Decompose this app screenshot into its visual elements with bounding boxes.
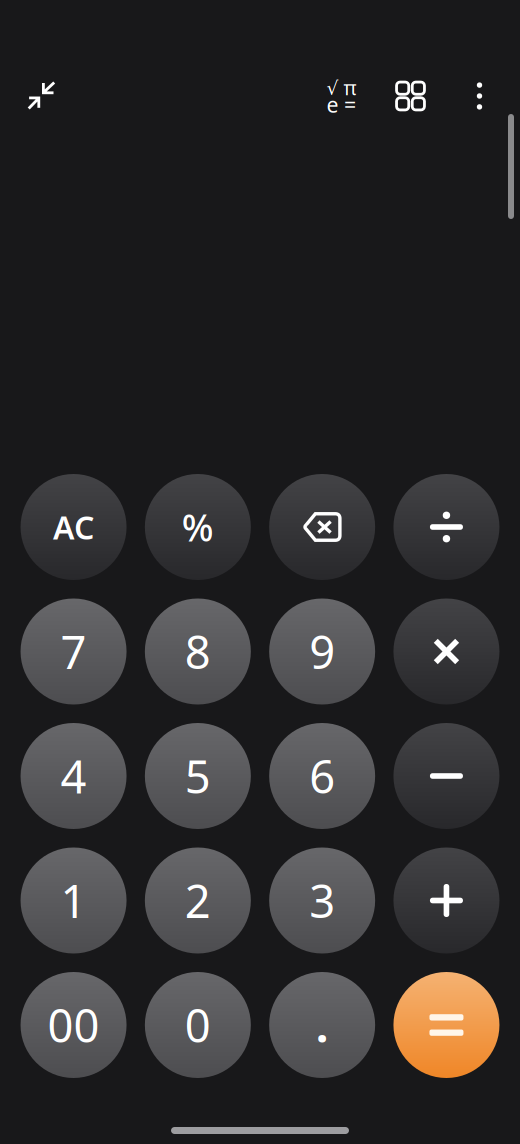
button[interactable]: 6 — [269, 723, 375, 829]
button[interactable]: 8 — [145, 598, 251, 704]
button[interactable]: 5 — [145, 723, 251, 829]
staticText: AC — [53, 506, 94, 548]
staticText: 0 — [185, 995, 211, 1055]
button[interactable]: . — [269, 972, 375, 1078]
button[interactable]: More options — [462, 73, 496, 119]
staticText: 8 — [185, 621, 211, 682]
staticText: . — [316, 995, 329, 1055]
staticText: e — [327, 90, 339, 119]
button[interactable]: 0 — [145, 972, 251, 1078]
staticText: 2 — [185, 870, 211, 931]
button[interactable] — [393, 847, 499, 953]
button[interactable] — [269, 474, 375, 580]
button[interactable]: 3 — [269, 847, 375, 953]
staticText: √ — [327, 77, 339, 99]
staticText: = — [344, 90, 356, 119]
button[interactable] — [393, 474, 499, 580]
button[interactable]: 2 — [145, 847, 251, 953]
button[interactable]: Scientific mode — [324, 81, 358, 111]
button[interactable] — [393, 598, 499, 704]
button[interactable]: 9 — [269, 598, 375, 704]
button[interactable]: 1 — [21, 847, 127, 953]
staticText: π — [343, 74, 356, 101]
staticText: % — [182, 502, 214, 552]
button[interactable]: Keypad layout — [390, 73, 430, 119]
staticText: 00 — [48, 995, 100, 1055]
staticText: 6 — [309, 746, 335, 806]
button[interactable]: 00 — [21, 972, 127, 1078]
staticText: 5 — [185, 746, 211, 806]
staticText: 3 — [309, 870, 335, 931]
staticText: 7 — [61, 621, 87, 682]
button[interactable]: Collapse — [20, 70, 60, 116]
button[interactable]: 4 — [21, 723, 127, 829]
staticText: 4 — [61, 746, 87, 806]
button[interactable]: 7 — [21, 598, 127, 704]
button[interactable]: % — [145, 474, 251, 580]
staticText: 9 — [309, 621, 335, 682]
button[interactable]: AC — [21, 474, 127, 580]
button[interactable] — [393, 972, 499, 1078]
staticText: 1 — [61, 870, 87, 931]
button[interactable] — [393, 723, 499, 829]
